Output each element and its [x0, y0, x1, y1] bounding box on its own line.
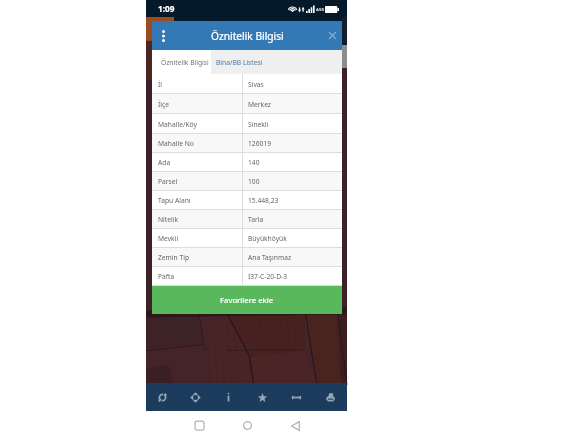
staticText: 100: [248, 177, 260, 186]
staticText: Sinekli: [248, 120, 269, 129]
staticText: Nitelik: [158, 215, 179, 224]
button[interactable]: Print: [313, 383, 347, 411]
button[interactable]: İl: [152, 74, 342, 94]
staticText: 126019: [248, 139, 271, 148]
staticText: Büyükhöyük: [248, 234, 287, 243]
button[interactable]: İlçe: [152, 94, 342, 114]
staticText: 140: [248, 158, 260, 167]
staticText: Mevkii: [158, 234, 179, 243]
staticText: İlçe: [158, 100, 169, 109]
button[interactable]: Favorilere ekle: [152, 286, 342, 314]
button[interactable]: Measure: [279, 383, 313, 411]
staticText: I37-C-20-D-3: [248, 272, 288, 281]
staticText: Mahalle No: [158, 139, 194, 148]
button[interactable]: Recents: [187, 413, 212, 438]
button[interactable]: Home: [235, 413, 260, 438]
staticText: Öznitelik Bilgisi: [161, 58, 209, 67]
staticText: İl: [158, 80, 162, 89]
button[interactable]: Tapu Alanı: [152, 191, 342, 210]
button[interactable]: Favorite: [245, 383, 279, 411]
staticText: Sivas: [248, 80, 264, 89]
staticText: 4:55: [316, 7, 324, 12]
button[interactable]: Nitelik: [152, 210, 342, 229]
staticText: Öznitelik Bilgisi: [211, 29, 284, 43]
button[interactable]: Close: [322, 21, 342, 50]
staticText: Parsel: [158, 177, 178, 186]
staticText: Merkez: [248, 100, 272, 109]
staticText: Ada: [158, 158, 171, 167]
button[interactable]: More options: [152, 21, 174, 50]
button[interactable]: Pan: [179, 383, 212, 411]
button[interactable]: Zemin Tip: [152, 248, 342, 267]
staticText: Zemin Tip: [158, 253, 190, 262]
staticText: Tapu Alanı: [158, 196, 191, 205]
button[interactable]: Back: [283, 413, 308, 438]
staticText: Favorilere ekle: [220, 295, 274, 306]
button[interactable]: Parsel: [152, 172, 342, 191]
staticText: Bina/BB Listesi: [216, 58, 263, 67]
staticText: Mahalle/Köy: [158, 120, 197, 129]
button[interactable]: Öznitelik Bilgisi: [152, 50, 211, 74]
button[interactable]: Mevkii: [152, 229, 342, 248]
staticText: Tarla: [248, 215, 264, 224]
button[interactable]: Info: [212, 383, 245, 411]
button[interactable]: Mahalle/Köy: [152, 114, 342, 134]
button[interactable]: Bina/BB Listesi: [211, 50, 342, 74]
button[interactable]: Pafta: [152, 267, 342, 286]
button[interactable]: Ada: [152, 153, 342, 172]
staticText: 15.448,23: [248, 196, 279, 205]
staticText: Ana Taşınmaz: [248, 253, 292, 262]
button[interactable]: Refresh: [146, 383, 179, 411]
staticText: 1:09: [158, 3, 175, 14]
button[interactable]: Mahalle No: [152, 134, 342, 153]
staticText: Pafta: [158, 272, 175, 281]
